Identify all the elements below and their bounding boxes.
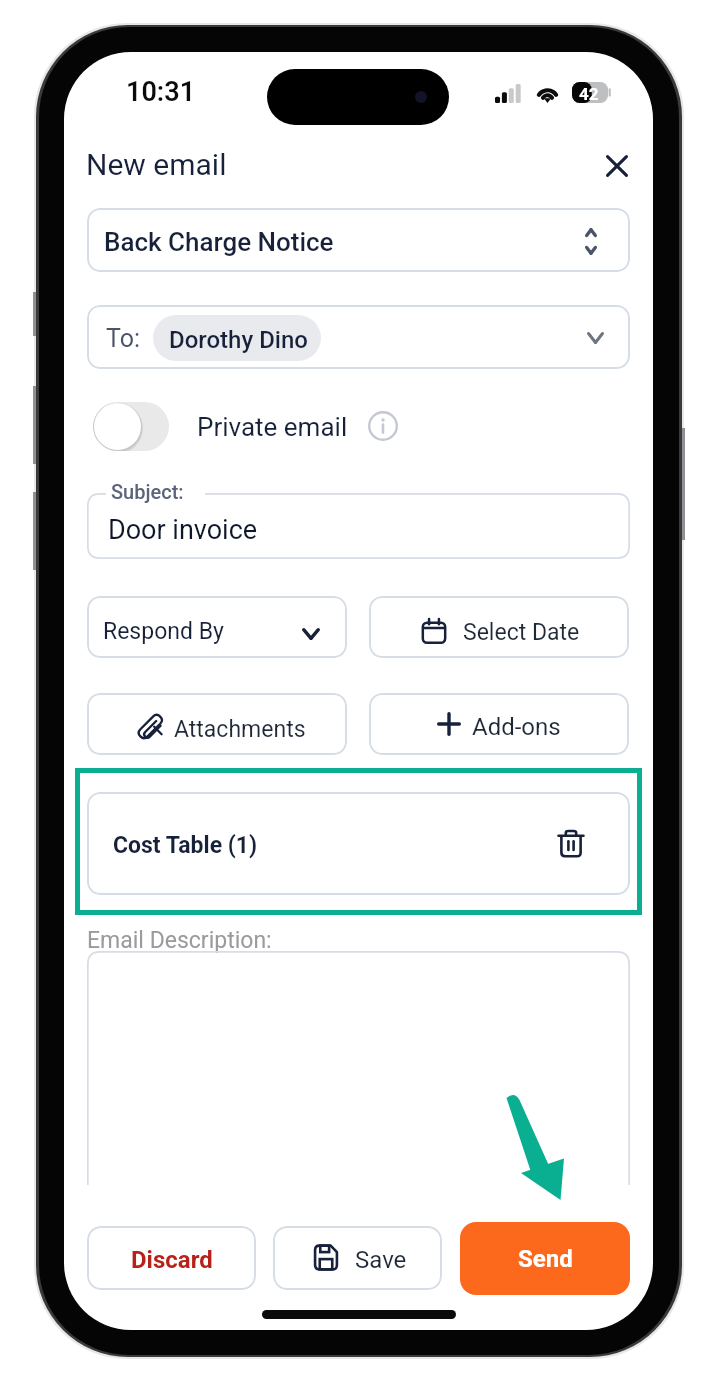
button[interactable]: To: <box>87 305 630 369</box>
staticText: Send <box>518 1245 573 1273</box>
staticText: 42 <box>579 84 599 104</box>
button[interactable]: Save <box>273 1226 442 1290</box>
staticText: 10:31 <box>126 76 196 108</box>
staticText: Door invoice <box>108 514 258 546</box>
button[interactable]: Delete cost table <box>553 824 589 862</box>
staticText: Cost Table (1) <box>113 832 258 859</box>
button[interactable]: Send <box>460 1222 630 1295</box>
staticText: Back Charge Notice <box>104 227 334 257</box>
staticText: Email Description: <box>87 927 272 954</box>
staticText: Subject: <box>111 480 184 503</box>
staticText: Discard <box>131 1246 213 1274</box>
button[interactable]: Cost Table (1) <box>87 792 630 895</box>
other: Info about private email <box>368 411 398 441</box>
staticText: Attachments <box>174 716 306 743</box>
button[interactable]: Attachments <box>87 693 347 755</box>
button[interactable]: Private email toggle <box>93 402 169 451</box>
button[interactable]: Back Charge Notice <box>87 208 630 272</box>
button[interactable]: Select Date <box>369 596 629 658</box>
staticText: Save <box>355 1246 407 1274</box>
staticText: Select Date <box>463 619 580 646</box>
staticText: Add-ons <box>472 713 561 741</box>
button[interactable]: Discard <box>87 1226 256 1290</box>
staticText: Private email <box>197 412 348 442</box>
button[interactable]: Respond By <box>87 596 347 658</box>
button[interactable]: Dorothy Dino <box>153 315 321 361</box>
staticText: Respond By <box>103 618 224 645</box>
button[interactable]: Add-ons <box>369 693 629 755</box>
button[interactable] <box>87 951 630 1185</box>
staticText: Dorothy Dino <box>169 326 308 354</box>
staticText: To: <box>106 324 141 353</box>
button[interactable]: Close <box>592 141 641 190</box>
staticText: New email <box>86 147 227 182</box>
